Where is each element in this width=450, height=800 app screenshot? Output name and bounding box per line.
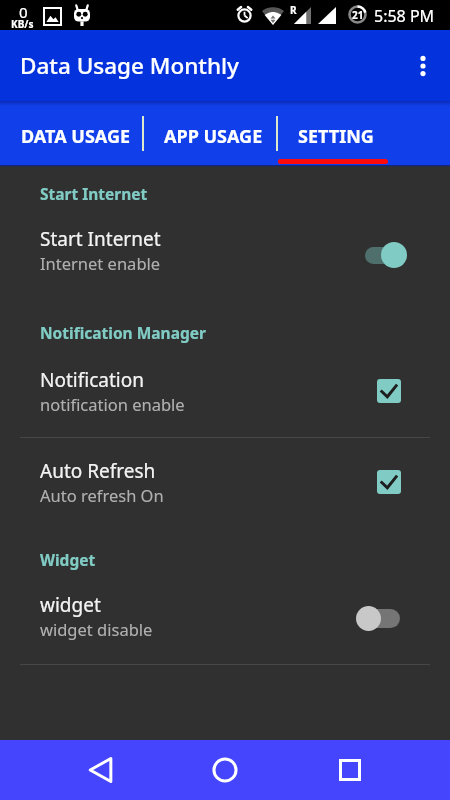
button[interactable]: DATA USAGE	[0, 101, 143, 165]
staticText: 0	[19, 2, 28, 22]
staticText: Start Internet	[40, 183, 148, 204]
button[interactable]: Widget	[40, 549, 96, 570]
button[interactable]: Auto Refresh	[0, 446, 450, 518]
button[interactable]: Notification Manager	[40, 322, 206, 343]
button[interactable]: Recents	[325, 745, 375, 795]
staticText: Widget	[40, 549, 96, 570]
staticText: Auto refresh On	[40, 484, 164, 506]
button[interactable]: widget	[0, 580, 450, 652]
staticText: notification enable	[40, 393, 185, 415]
button[interactable]: Checked	[372, 374, 406, 408]
button[interactable]: Notification	[0, 355, 450, 427]
staticText: Start Internet	[40, 226, 161, 252]
button[interactable]: Checked	[372, 465, 406, 499]
button[interactable]: Start Internet	[40, 183, 148, 204]
button[interactable]: Start Internet	[0, 214, 450, 286]
staticText: Internet enable	[40, 252, 161, 274]
button[interactable]: More options	[400, 41, 450, 91]
button[interactable]: Home	[200, 745, 250, 795]
staticText: Data Usage Monthly	[20, 50, 239, 81]
button[interactable]: widget off	[365, 598, 406, 634]
staticText: Auto Refresh	[40, 458, 156, 484]
button[interactable]: SETTING	[277, 101, 450, 165]
staticText: 5:58 PM	[374, 5, 435, 27]
staticText: widget disable	[40, 618, 153, 640]
staticText: KB/s	[11, 17, 34, 31]
button[interactable]: Start Internet on	[365, 232, 406, 268]
staticText: Notification Manager	[40, 322, 206, 343]
staticText: widget	[40, 592, 101, 618]
button[interactable]: Back	[76, 745, 126, 795]
staticText: Notification	[40, 367, 144, 393]
staticText: R	[290, 3, 297, 17]
staticText: APP USAGE	[164, 124, 263, 149]
staticText: DATA USAGE	[21, 124, 131, 149]
staticText: 21	[352, 8, 364, 22]
staticText: SETTING	[298, 124, 374, 149]
button[interactable]: APP USAGE	[143, 101, 277, 165]
